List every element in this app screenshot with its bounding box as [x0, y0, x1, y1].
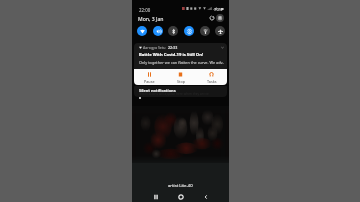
staticText: Mon, 3 Jan — [138, 16, 164, 23]
button[interactable]: Home — [176, 192, 186, 202]
staticText: Only together we can flatten the curve. … — [139, 60, 225, 65]
button[interactable]: Aarogya Setu — [134, 43, 227, 85]
button[interactable]: Settings — [216, 14, 224, 22]
button[interactable]: Bluetooth — [168, 26, 178, 36]
button[interactable]: Sound — [153, 26, 163, 36]
staticText: Battle With Covid-19 is Still On! — [139, 52, 204, 58]
button[interactable]: Auto rotate — [184, 26, 194, 36]
button[interactable]: Tasks — [196, 69, 227, 85]
button[interactable]: Silent notifications — [134, 86, 227, 97]
button[interactable]: Flashlight — [200, 26, 210, 36]
button[interactable]: Stop — [165, 69, 196, 85]
staticText: Pause — [144, 79, 155, 84]
staticText: Tasks — [207, 79, 217, 84]
button[interactable]: Pause — [134, 69, 165, 85]
button[interactable]: Rotate — [208, 14, 216, 22]
button[interactable]: Wi-Fi — [137, 26, 147, 36]
staticText: 22:00 — [139, 7, 151, 13]
staticText: Aarogya Setu — [143, 45, 166, 50]
staticText: Silent notifications — [139, 88, 176, 93]
button[interactable]: Airplane mode — [215, 26, 225, 36]
button[interactable]: Recents — [151, 192, 161, 202]
staticText: 22:33 — [168, 45, 178, 50]
button[interactable]: Back — [201, 192, 211, 202]
staticText: 70% — [214, 7, 223, 13]
staticText: artist Lite-40 — [168, 183, 193, 189]
staticText: Stop — [177, 79, 185, 84]
